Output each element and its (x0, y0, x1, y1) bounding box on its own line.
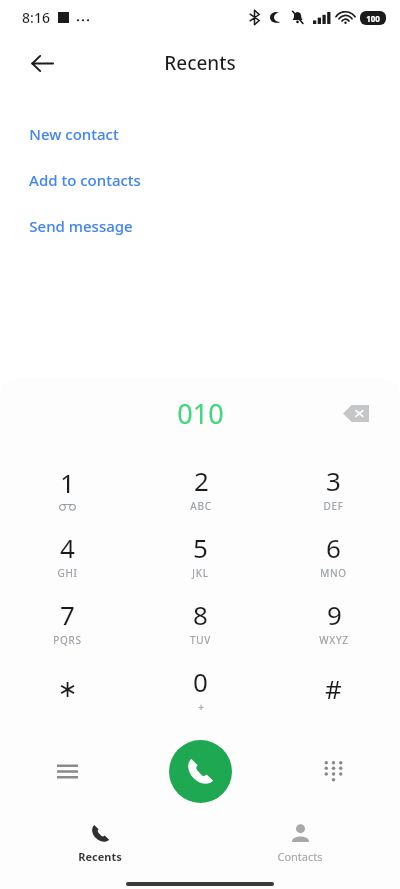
button[interactable]: # (267, 655, 400, 722)
button[interactable]: 4 (0, 521, 134, 588)
staticText: Add to contacts (29, 170, 141, 190)
staticText: 4 (60, 530, 75, 565)
button[interactable]: 6 (267, 521, 400, 588)
staticText: 2 (194, 463, 209, 498)
button[interactable]: 0 (134, 655, 267, 722)
button[interactable]: 8 (134, 588, 267, 655)
staticText: Contacts (277, 849, 323, 864)
staticText: TUV (190, 633, 211, 647)
staticText: 5 (193, 530, 208, 565)
button[interactable]: Call (169, 740, 232, 803)
staticText: Recents (164, 50, 236, 76)
staticText: Recents (78, 849, 122, 864)
staticText: PQRS (53, 633, 82, 647)
button[interactable]: Backspace (334, 391, 378, 435)
button[interactable]: Options menu (44, 748, 90, 794)
staticText: 1 (60, 465, 75, 500)
button[interactable]: 2 (134, 454, 267, 521)
staticText: WXYZ (319, 633, 349, 647)
button[interactable]: Recents (0, 814, 200, 872)
staticText: ∗ (57, 675, 78, 703)
staticText: 100 (366, 13, 380, 24)
button[interactable]: 7 (0, 588, 134, 655)
staticText: DEF (323, 499, 344, 513)
staticText: + (198, 700, 204, 714)
staticText: Send message (29, 216, 133, 236)
staticText: 8:16 (22, 8, 50, 27)
button[interactable]: Add to contacts (0, 168, 400, 192)
staticText: New contact (29, 124, 119, 144)
button[interactable]: Keypad (310, 748, 356, 794)
staticText: MNO (320, 566, 347, 580)
button[interactable]: ∗ (0, 655, 134, 722)
staticText: GHI (57, 566, 78, 580)
button[interactable]: 9 (267, 588, 400, 655)
staticText: 9 (327, 597, 342, 632)
staticText: 3 (326, 463, 341, 498)
staticText: JKL (192, 566, 209, 580)
staticText: 7 (60, 597, 75, 632)
staticText: # (325, 671, 342, 706)
button[interactable]: 5 (134, 521, 267, 588)
staticText: 8 (193, 597, 208, 632)
button[interactable]: Back (18, 39, 66, 87)
staticText: 0 (193, 664, 208, 699)
button[interactable]: New contact (0, 122, 400, 146)
staticText: 010 (177, 395, 224, 432)
staticText: ABC (190, 499, 212, 513)
button[interactable]: 3 (267, 454, 400, 521)
button[interactable]: Send message (0, 214, 400, 238)
button[interactable]: 1 (0, 454, 134, 521)
staticText: 6 (326, 530, 341, 565)
button[interactable]: Contacts (200, 814, 400, 872)
